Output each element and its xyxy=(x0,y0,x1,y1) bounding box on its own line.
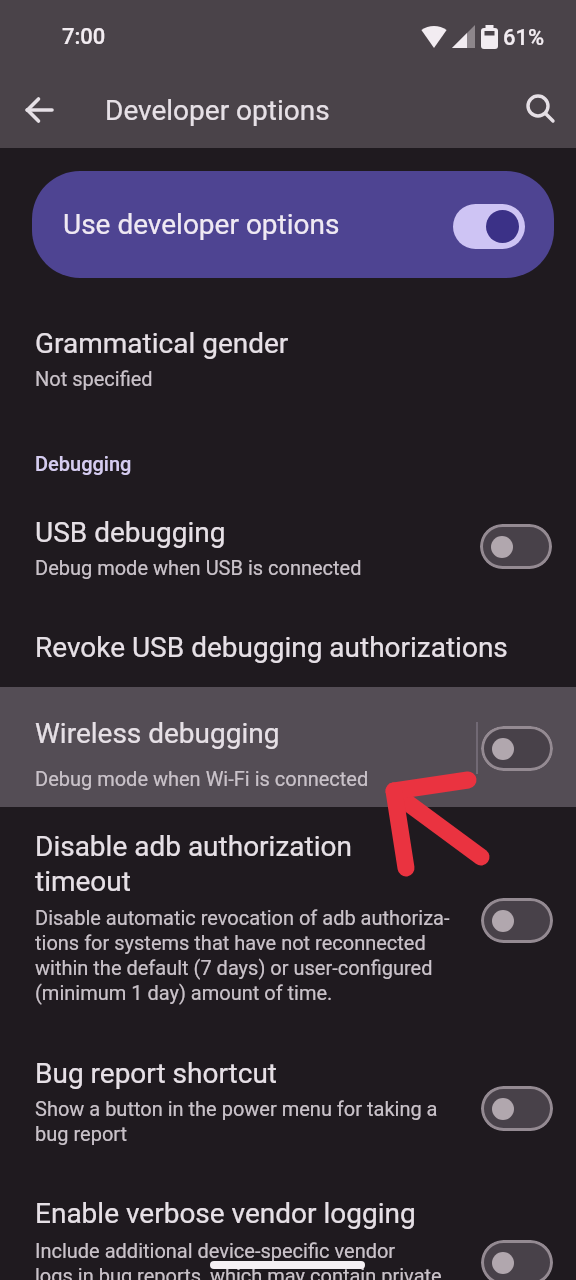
button[interactable] xyxy=(517,86,565,134)
staticText: Include additional device-specific vendo… xyxy=(35,1239,442,1280)
staticText: Debug mode when Wi-Fi is connected xyxy=(35,767,369,790)
staticText: Enable verbose vendor logging xyxy=(35,1197,416,1230)
button[interactable] xyxy=(480,524,552,569)
staticText: 61% xyxy=(503,25,545,48)
staticText: Wireless debugging xyxy=(35,717,280,750)
staticText: Bug report shortcut xyxy=(35,1057,278,1090)
button[interactable] xyxy=(15,86,63,134)
button[interactable] xyxy=(0,687,576,807)
button[interactable] xyxy=(453,204,525,249)
staticText: Disable automatic revocation of adb auth… xyxy=(35,906,450,1005)
staticText: Show a button in the power menu for taki… xyxy=(35,1097,438,1146)
staticText: Debug mode when USB is connected xyxy=(35,556,362,579)
staticText: Use developer options xyxy=(63,208,340,241)
staticText: Debugging xyxy=(35,452,132,475)
button[interactable] xyxy=(481,726,553,771)
staticText: Grammatical gender xyxy=(35,327,289,360)
staticText: 7:00 xyxy=(62,24,106,48)
button[interactable] xyxy=(0,500,576,595)
staticText: Not specified xyxy=(35,367,153,390)
staticText: Disable adb authorization timeout xyxy=(35,830,352,898)
button[interactable] xyxy=(0,312,576,406)
staticText: USB debugging xyxy=(35,516,226,549)
button[interactable] xyxy=(481,898,553,943)
staticText: Developer options xyxy=(105,94,330,127)
staticText: Revoke USB debugging authorizations xyxy=(35,631,508,664)
button[interactable] xyxy=(0,615,576,679)
button[interactable] xyxy=(481,1086,553,1131)
button[interactable] xyxy=(0,1185,576,1280)
button[interactable] xyxy=(0,820,576,1015)
button[interactable] xyxy=(0,1045,576,1160)
button[interactable] xyxy=(481,1240,553,1280)
button[interactable]: Use developer options xyxy=(32,171,554,278)
